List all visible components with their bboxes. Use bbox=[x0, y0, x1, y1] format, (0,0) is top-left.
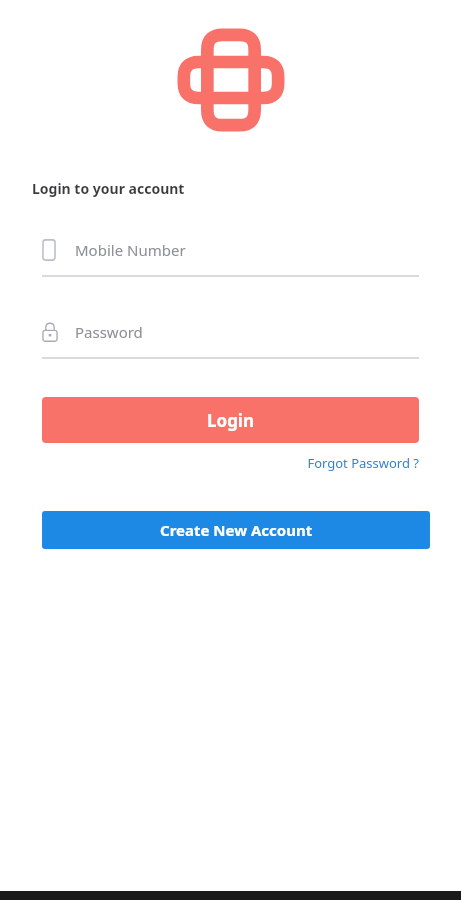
button[interactable]: Password bbox=[42, 316, 419, 359]
staticText: Mobile Number bbox=[75, 240, 186, 260]
button[interactable]: Forgot Password ? bbox=[307, 454, 419, 472]
button[interactable]: Login bbox=[42, 397, 419, 443]
other: Password bbox=[42, 322, 58, 342]
staticText: Login to your account bbox=[32, 179, 185, 198]
other: Mobile Number bbox=[42, 239, 56, 261]
button[interactable]: Mobile Number bbox=[42, 234, 419, 277]
staticText: Forgot Password ? bbox=[307, 454, 419, 472]
button[interactable]: Create New Account bbox=[42, 511, 430, 549]
staticText: Password bbox=[75, 322, 143, 342]
staticText: Login bbox=[207, 409, 255, 432]
staticText: Create New Account bbox=[160, 520, 313, 540]
